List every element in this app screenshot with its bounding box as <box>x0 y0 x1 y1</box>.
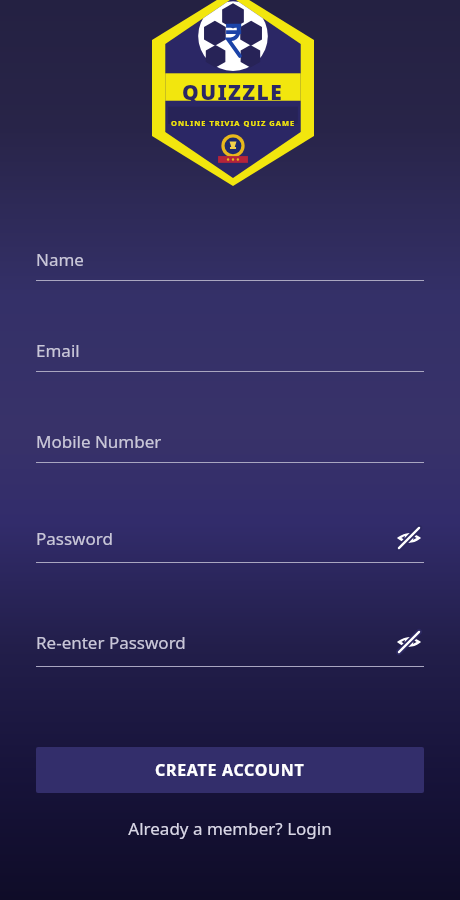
button[interactable]: Already a member? Login <box>36 817 424 840</box>
button[interactable]: CREATE ACCOUNT <box>36 747 424 793</box>
staticText: Mobile Number <box>36 430 424 453</box>
staticText: Email <box>36 339 424 362</box>
staticText: Re-enter Password <box>36 631 394 654</box>
staticText: Password <box>36 527 394 550</box>
staticText: CREATE ACCOUNT <box>155 759 305 781</box>
staticText: QUIZZLE <box>182 78 284 107</box>
staticText: Name <box>36 248 424 271</box>
staticText: Already a member? Login <box>128 817 332 840</box>
button[interactable]: Show password <box>394 627 424 657</box>
staticText: ONLINE TRIVIA QUIZ GAME <box>171 118 296 128</box>
button[interactable]: Name <box>36 248 424 271</box>
button[interactable]: Mobile Number <box>36 430 424 453</box>
button[interactable]: Password <box>36 523 424 553</box>
button[interactable]: Email <box>36 339 424 362</box>
button[interactable]: Re-enter Password <box>36 627 424 657</box>
button[interactable]: Show password <box>394 523 424 553</box>
